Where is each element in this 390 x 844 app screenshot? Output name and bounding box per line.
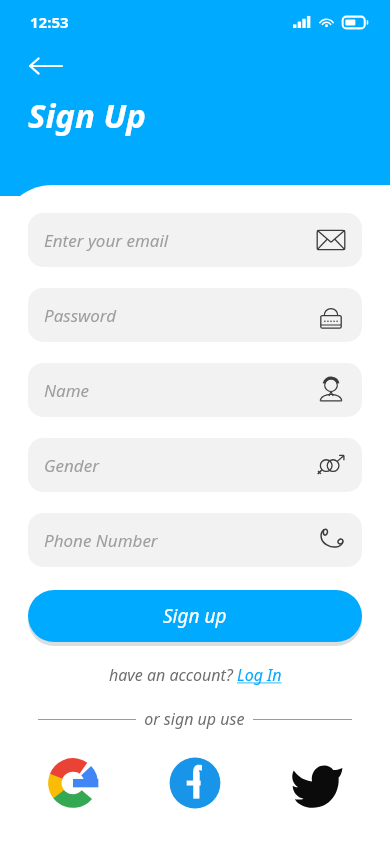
button[interactable]: Sign up [28,590,362,642]
staticText: have an account? [109,664,237,686]
button[interactable]: Gender [28,438,362,492]
button[interactable]: Back [22,42,70,90]
staticText: Log In [237,664,282,686]
button[interactable]: Sign up with Facebook [164,752,226,814]
staticText: Sign up [163,603,227,629]
button[interactable]: Name [28,363,362,417]
button[interactable]: Enter your email [28,213,362,267]
button[interactable]: Log In [237,664,282,686]
staticText: Sign Up [28,93,147,138]
button[interactable]: Sign up with Twitter [286,752,348,814]
staticText: Password [44,304,117,327]
staticText: 12:53 [30,12,69,32]
button[interactable]: Sign up with Google [42,752,104,814]
staticText: Gender [44,454,99,477]
staticText: Enter your email [44,229,169,252]
button[interactable]: Phone Number [28,513,362,567]
staticText: Phone Number [44,529,158,552]
button[interactable]: Password [28,288,362,342]
staticText: Name [44,379,90,402]
staticText: or sign up use [136,708,253,730]
